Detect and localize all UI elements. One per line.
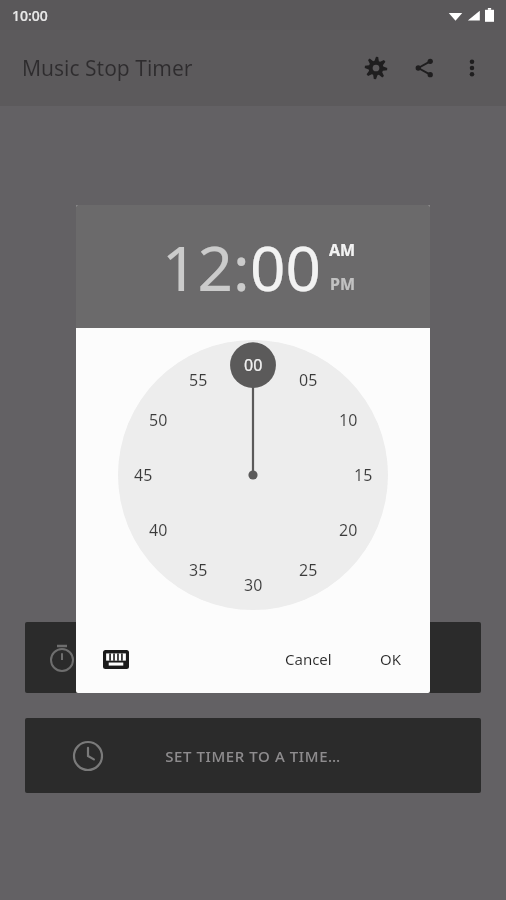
button[interactable]: PM [330,273,356,295]
staticText: 00 [244,354,263,376]
staticText: 10:00 [12,6,48,25]
staticText: 05 [299,369,318,391]
staticText: 25 [299,559,318,581]
staticText: : [233,225,250,309]
staticText: OK [380,649,402,669]
staticText: 20 [339,519,358,541]
button[interactable]: AM [329,239,356,261]
staticText: 15 [354,464,373,486]
staticText: SET TIMER TO A TIME… [165,746,341,766]
button[interactable]: SET TIMER TO A TIME… [25,718,481,793]
staticText: 35 [189,559,208,581]
staticText: 40 [149,519,168,541]
button[interactable] [118,340,388,610]
staticText: Music Stop Timer [22,54,193,83]
button[interactable]: Share [400,44,448,92]
button[interactable]: Switch to text input [96,639,136,679]
button[interactable]: Settings [352,44,400,92]
button[interactable]: 12 [162,225,233,309]
button[interactable]: More options [448,44,496,92]
staticText: 10 [339,409,358,431]
staticText: Cancel [285,649,332,669]
staticText: 50 [149,409,168,431]
staticText: 30 [244,574,263,596]
staticText: 45 [134,464,153,486]
button[interactable] [25,622,481,693]
staticText: 55 [189,369,208,391]
button[interactable]: Cancel [271,641,346,677]
button[interactable]: OK [366,641,416,677]
button[interactable]: 00 [250,225,321,309]
